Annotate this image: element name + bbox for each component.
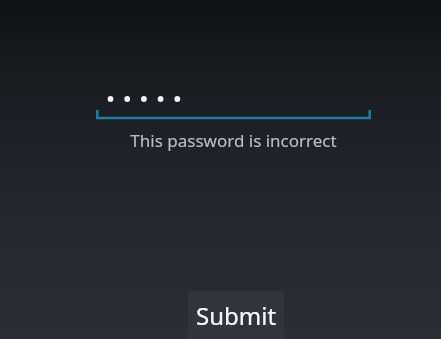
button[interactable]: Password field xyxy=(96,82,371,122)
staticText: This password is incorrect xyxy=(96,129,371,152)
staticText: Submit xyxy=(196,299,277,332)
button[interactable]: Submit xyxy=(188,291,284,339)
